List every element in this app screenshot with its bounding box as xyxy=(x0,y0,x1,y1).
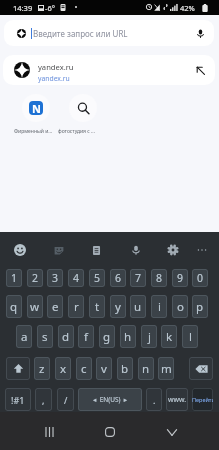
button[interactable]: Clipboard xyxy=(85,239,107,261)
staticText: / xyxy=(64,394,68,406)
button[interactable]: 9 xyxy=(172,269,188,287)
button[interactable]: f xyxy=(78,325,94,348)
staticText: 42% xyxy=(180,3,195,13)
button[interactable]: c xyxy=(76,357,92,380)
staticText: www. xyxy=(168,395,187,405)
staticText: y xyxy=(115,299,121,315)
button[interactable]: Введите запрос или URL xyxy=(4,20,214,46)
staticText: ◂ EN(US) ▸ xyxy=(93,395,128,404)
staticText: u xyxy=(134,299,142,315)
button[interactable]: y xyxy=(110,295,126,318)
button[interactable]: N xyxy=(22,94,50,122)
button[interactable]: k xyxy=(161,325,177,348)
button[interactable]: 0 xyxy=(192,269,208,287)
button[interactable]: d xyxy=(58,325,74,348)
staticText: l xyxy=(189,329,192,345)
button[interactable]: . xyxy=(146,388,162,411)
staticText: s xyxy=(42,329,48,345)
other: Voice search xyxy=(195,28,206,39)
button[interactable]: yandex.ru xyxy=(3,55,215,85)
button[interactable]: b xyxy=(117,357,133,380)
button[interactable] xyxy=(69,94,97,122)
button[interactable]: 4 xyxy=(68,269,84,287)
staticText: x xyxy=(60,361,67,377)
button[interactable]: r xyxy=(68,295,84,318)
button[interactable]: / xyxy=(57,388,74,411)
button[interactable]: Recents xyxy=(35,418,63,446)
button[interactable]: l xyxy=(182,325,198,348)
staticText: p xyxy=(196,299,204,315)
staticText: Фирменный и... xyxy=(14,128,53,135)
button[interactable]: s xyxy=(37,325,53,348)
button[interactable]: !#1 xyxy=(5,388,31,411)
button[interactable]: x xyxy=(55,357,71,380)
button[interactable]: 7 xyxy=(130,269,146,287)
button[interactable]: 6 xyxy=(110,269,126,287)
button[interactable]: Stickers xyxy=(48,239,70,261)
button[interactable]: p xyxy=(192,295,208,318)
button[interactable]: Settings xyxy=(162,239,184,261)
staticText: f xyxy=(84,329,88,345)
button[interactable]: u xyxy=(130,295,146,318)
staticText: z xyxy=(39,361,45,377)
staticText: фотостудия с ... xyxy=(58,128,96,135)
button[interactable]: 8 xyxy=(151,269,167,287)
button[interactable]: ◂ EN(US) ▸ xyxy=(78,388,142,411)
button[interactable]: 3 xyxy=(47,269,63,287)
staticText: n xyxy=(142,361,150,377)
button[interactable]: z xyxy=(34,357,50,380)
button[interactable]: Shift xyxy=(6,357,30,380)
staticText: Перейти xyxy=(192,396,213,403)
staticText: o xyxy=(177,299,184,315)
staticText: 14:39 xyxy=(13,3,33,13)
staticText: a xyxy=(21,329,28,345)
staticText: N xyxy=(32,101,41,115)
button[interactable]: t xyxy=(89,295,105,318)
staticText: g xyxy=(103,329,111,345)
button[interactable]: e xyxy=(47,295,63,318)
button[interactable]: m xyxy=(158,357,174,380)
button[interactable]: 2 xyxy=(27,269,43,287)
other: Shift xyxy=(13,363,24,374)
staticText: k xyxy=(166,329,173,345)
button[interactable]: w xyxy=(27,295,43,318)
button[interactable]: j xyxy=(141,325,157,348)
staticText: 9 xyxy=(177,271,184,285)
button[interactable]: o xyxy=(172,295,188,318)
staticText: t xyxy=(95,299,100,315)
staticText: yandex.ru xyxy=(38,74,70,83)
button[interactable]: v xyxy=(96,357,112,380)
other: Voice search xyxy=(130,244,142,256)
button[interactable]: Перейти xyxy=(192,388,213,411)
staticText: w xyxy=(30,299,40,315)
staticText: 2 xyxy=(32,271,39,285)
button[interactable]: a xyxy=(16,325,32,348)
staticText: h xyxy=(124,329,132,345)
button[interactable]: h xyxy=(120,325,136,348)
staticText: r xyxy=(74,299,79,315)
staticText: 1 xyxy=(11,271,18,285)
button[interactable]: i xyxy=(151,295,167,318)
staticText: 7 xyxy=(135,271,142,285)
staticText: 5 xyxy=(94,271,101,285)
staticText: j xyxy=(148,329,151,345)
staticText: b xyxy=(121,361,129,377)
button[interactable]: Backspace xyxy=(189,357,213,380)
button[interactable]: 1 xyxy=(6,269,22,287)
staticText: v xyxy=(101,361,107,377)
button[interactable]: Back xyxy=(158,418,186,446)
staticText: q xyxy=(10,299,18,315)
button[interactable]: g xyxy=(99,325,115,348)
staticText: c xyxy=(81,361,87,377)
button[interactable]: , xyxy=(35,388,52,411)
button[interactable]: www. xyxy=(166,388,188,411)
staticText: 3 xyxy=(52,271,59,285)
button[interactable]: q xyxy=(6,295,22,318)
button[interactable]: More xyxy=(191,239,213,261)
button[interactable]: Voice input xyxy=(125,239,147,261)
staticText: 6 xyxy=(115,271,122,285)
button[interactable]: Home xyxy=(96,418,124,446)
button[interactable]: 5 xyxy=(89,269,105,287)
button[interactable]: Emoji xyxy=(9,239,31,261)
button[interactable]: n xyxy=(138,357,154,380)
